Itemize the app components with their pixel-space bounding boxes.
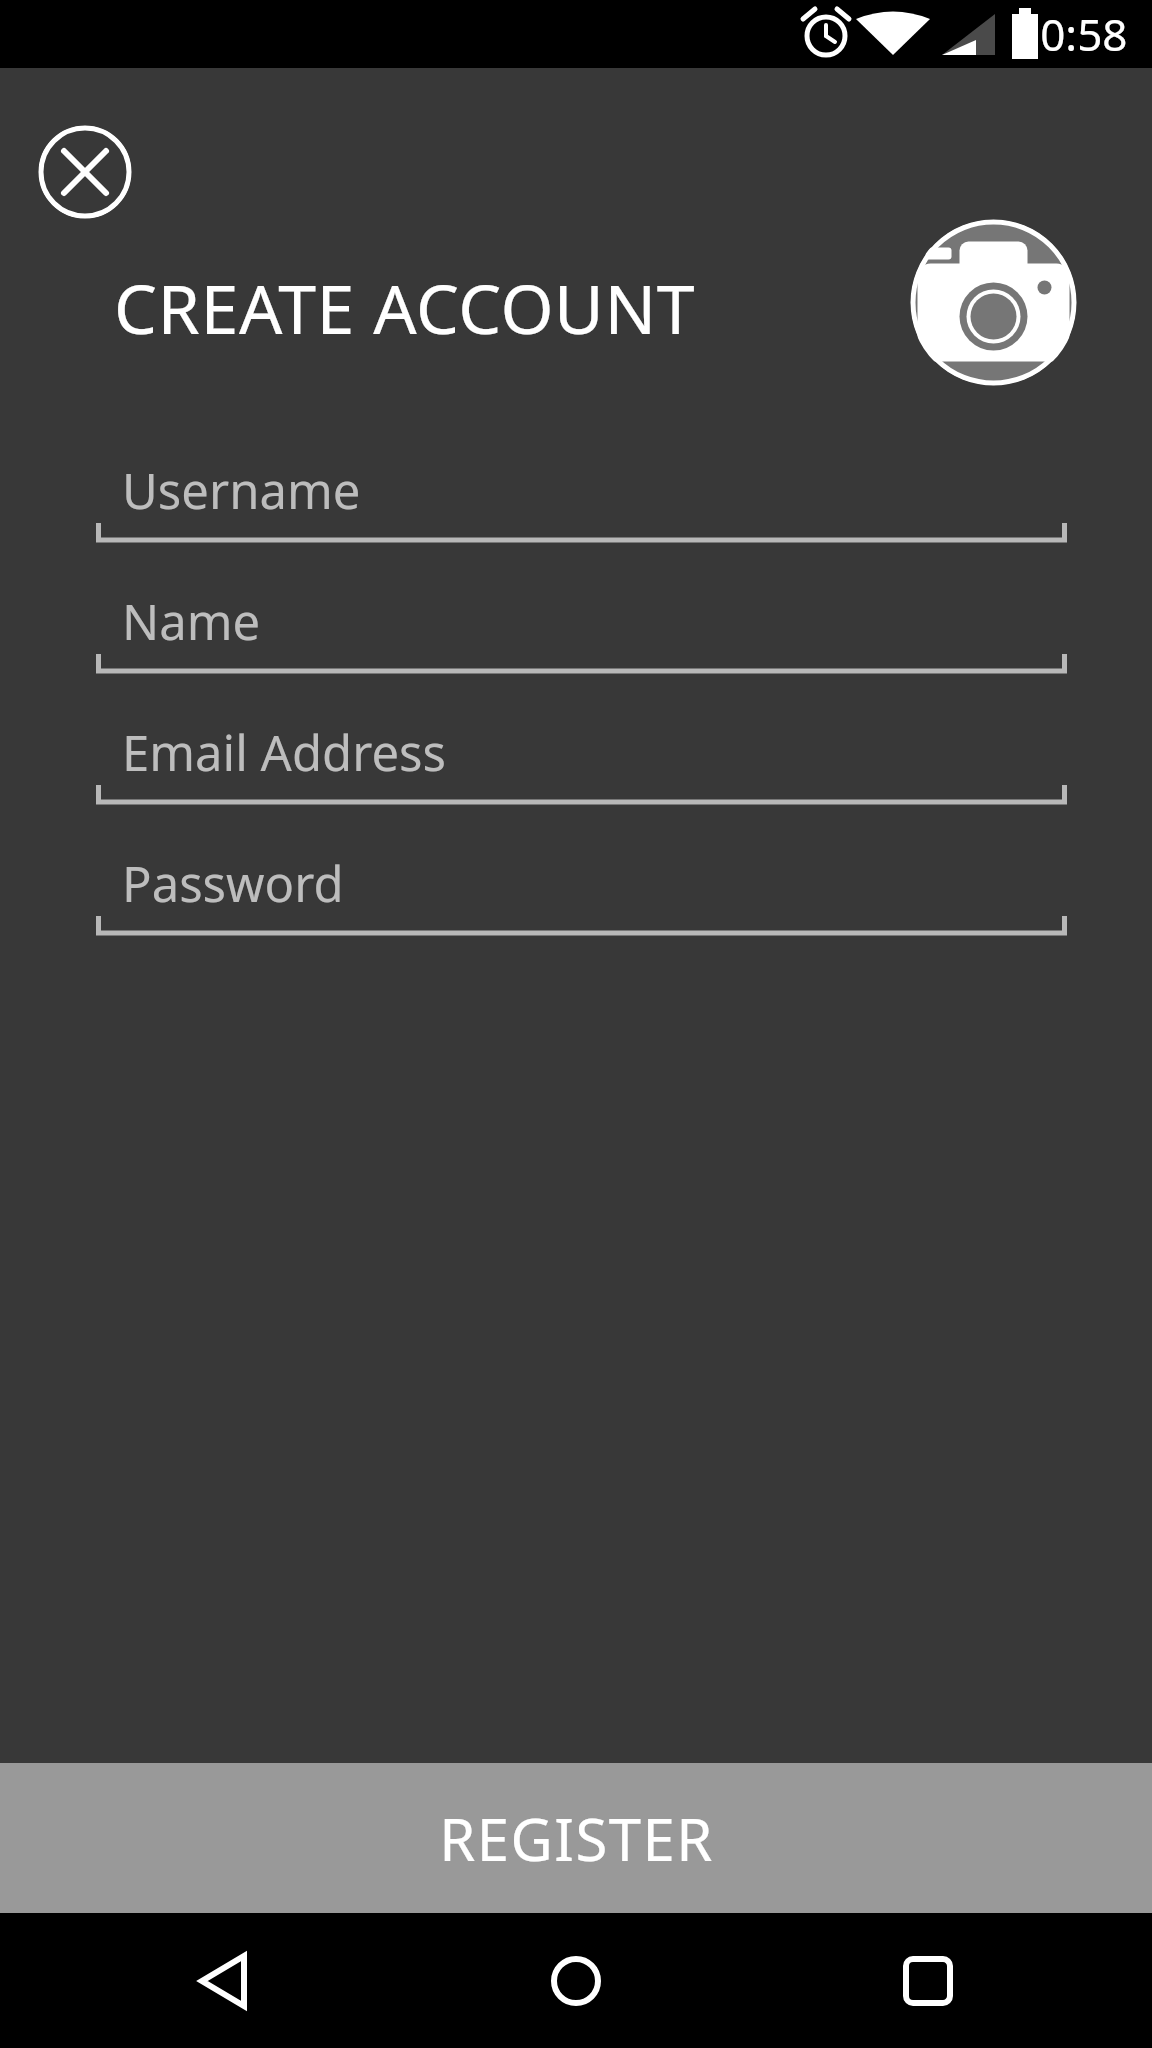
button[interactable]: Close (38, 125, 132, 219)
staticText: CREATE ACCOUNT (114, 261, 696, 354)
button[interactable]: Recent apps (893, 1913, 963, 2048)
button[interactable]: Email Address (96, 707, 1067, 807)
button[interactable]: Back (189, 1913, 259, 2048)
button[interactable]: REGISTER (0, 1763, 1152, 1913)
staticText: 10:58 (1015, 4, 1128, 64)
staticText: Name (122, 588, 261, 655)
staticText: Email Address (122, 719, 446, 786)
staticText: Username (122, 457, 361, 524)
staticText: Password (122, 850, 344, 917)
button[interactable]: Username (96, 445, 1067, 545)
button[interactable]: Add profile photo (910, 219, 1077, 386)
staticText: REGISTER (439, 1799, 714, 1878)
button[interactable]: Home (541, 1913, 611, 2048)
button[interactable]: Password (96, 838, 1067, 938)
button[interactable]: Name (96, 576, 1067, 676)
